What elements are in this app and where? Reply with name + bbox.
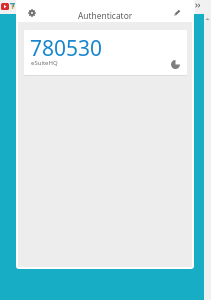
staticText: Authenticator [78,10,133,21]
button[interactable]: 780530 [24,30,187,75]
button[interactable]: More tabs [195,3,201,8]
staticText: 780530 [30,34,103,63]
button[interactable]: Scroll up [204,16,211,22]
staticText: eSuiteHQ [31,59,58,67]
button[interactable]: Settings [28,9,36,17]
button[interactable]: Edit accounts [173,9,181,17]
button[interactable]: Browser tab [17,1,195,14]
